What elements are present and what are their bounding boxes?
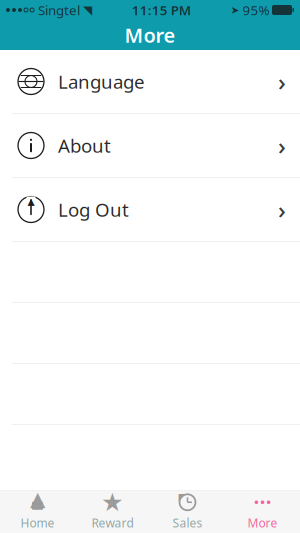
- staticText: Reward: [91, 515, 133, 531]
- staticText: Home: [20, 515, 54, 531]
- staticText: ›: [278, 194, 286, 225]
- staticText: ◤: [178, 491, 185, 502]
- staticText: 95%: [242, 1, 269, 19]
- staticText: More: [247, 515, 277, 531]
- staticText: ◥: [83, 3, 92, 17]
- staticText: Log Out: [58, 197, 129, 222]
- button[interactable]: ▲: [0, 491, 75, 533]
- button[interactable]: ◤: [150, 491, 225, 533]
- staticText: Sales: [172, 515, 202, 531]
- staticText: ➤: [230, 4, 239, 16]
- button[interactable]: ★: [75, 491, 150, 533]
- staticText: About: [58, 133, 111, 158]
- button[interactable]: ▲: [0, 178, 300, 242]
- button[interactable]: More: [225, 491, 300, 533]
- staticText: ›: [278, 130, 286, 161]
- staticText: More: [124, 22, 175, 48]
- button[interactable]: About: [0, 114, 300, 178]
- staticText: 11:15 PM: [132, 1, 191, 19]
- staticText: ▲: [27, 196, 34, 207]
- staticText: ▲: [30, 487, 45, 510]
- button[interactable]: Language: [0, 50, 300, 114]
- staticText: ›: [278, 66, 286, 97]
- staticText: Singtel: [38, 1, 80, 19]
- staticText: Language: [58, 69, 145, 94]
- staticText: ★: [101, 488, 124, 517]
